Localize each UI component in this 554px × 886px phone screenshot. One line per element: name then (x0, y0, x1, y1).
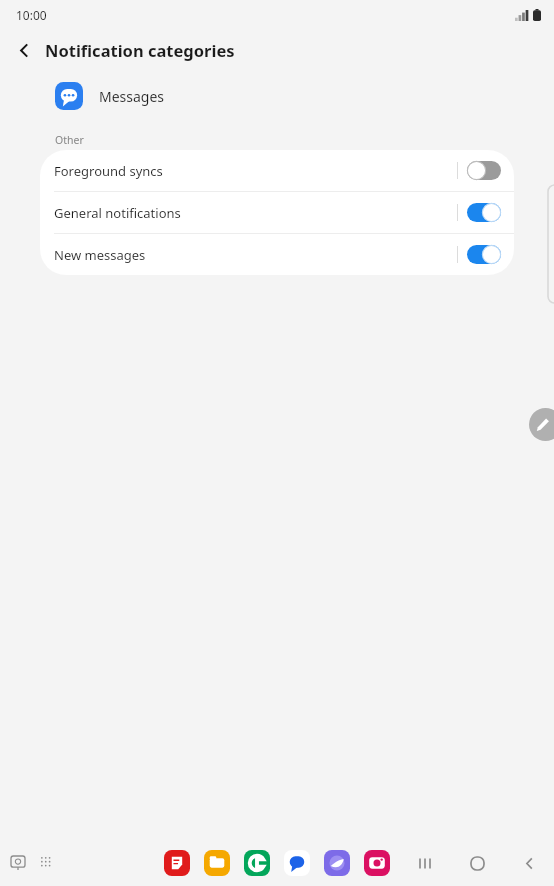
staticText: New messages (54, 246, 457, 264)
button[interactable]: On (467, 203, 501, 222)
button[interactable]: Recents (410, 848, 440, 878)
button[interactable]: App (363, 849, 391, 877)
button[interactable]: App (243, 849, 271, 877)
button[interactable]: Apps (34, 850, 60, 876)
button[interactable]: Home (462, 848, 492, 878)
staticText: General notifications (54, 204, 457, 222)
button[interactable]: Back (514, 848, 544, 878)
button[interactable]: On (467, 245, 501, 264)
staticText: Foreground syncs (54, 162, 457, 180)
staticText: Notification categories (45, 39, 235, 61)
button[interactable]: New messages (40, 234, 514, 275)
button[interactable]: App (163, 849, 191, 877)
button[interactable]: App (283, 849, 311, 877)
staticText: Other (55, 133, 84, 147)
button[interactable]: General notifications (40, 192, 514, 233)
staticText: Messages (99, 87, 165, 106)
button[interactable]: Off (467, 161, 501, 180)
staticText: 10:00 (16, 7, 47, 23)
button[interactable]: Recent apps (5, 850, 31, 876)
button[interactable]: App (323, 849, 351, 877)
button[interactable]: Edit (529, 408, 554, 441)
button[interactable]: App (203, 849, 231, 877)
button[interactable]: Navigate up (8, 34, 40, 66)
button[interactable]: Foreground syncs (40, 150, 514, 191)
